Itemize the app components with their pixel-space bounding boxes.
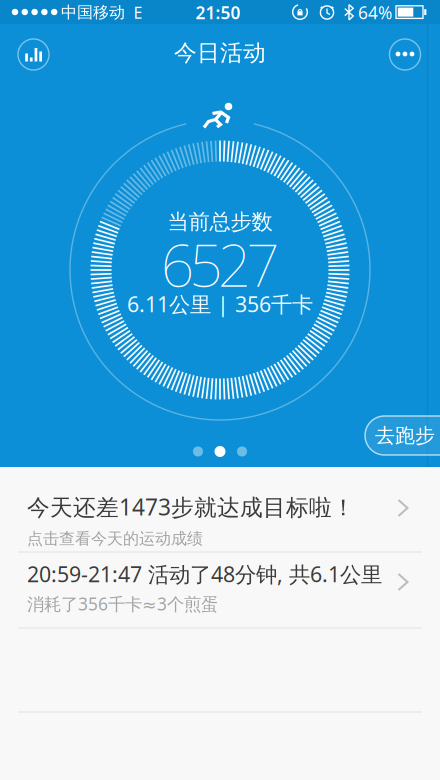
staticText: 21:50 [195,1,240,24]
button[interactable]: 去跑步 [365,416,440,455]
staticText: 中国移动 [61,3,125,22]
button[interactable]: 20:59-21:47 活动了48分钟, 共6.1公里 [0,552,440,628]
button[interactable] [383,32,427,76]
staticText: 当前总步数 [167,209,272,235]
staticText: E [133,2,142,23]
staticText: 今日活动 [174,39,266,67]
staticText: 64% [358,1,392,24]
staticText: 20:59-21:47 活动了48分钟, 共6.1公里 [27,560,382,588]
staticText: 6527 [161,225,279,303]
button[interactable] [11,32,55,76]
button[interactable]: 今天还差1473步就达成目标啦！ [0,467,440,552]
staticText: 消耗了356千卡≈3个煎蛋 [27,592,218,615]
staticText: 今天还差1473步就达成目标啦！ [27,492,355,522]
staticText: 点击查看今天的运动成绩 [27,529,203,548]
staticText: 6.11公里 | 356千卡 [127,290,313,318]
staticText: 去跑步 [375,423,435,448]
